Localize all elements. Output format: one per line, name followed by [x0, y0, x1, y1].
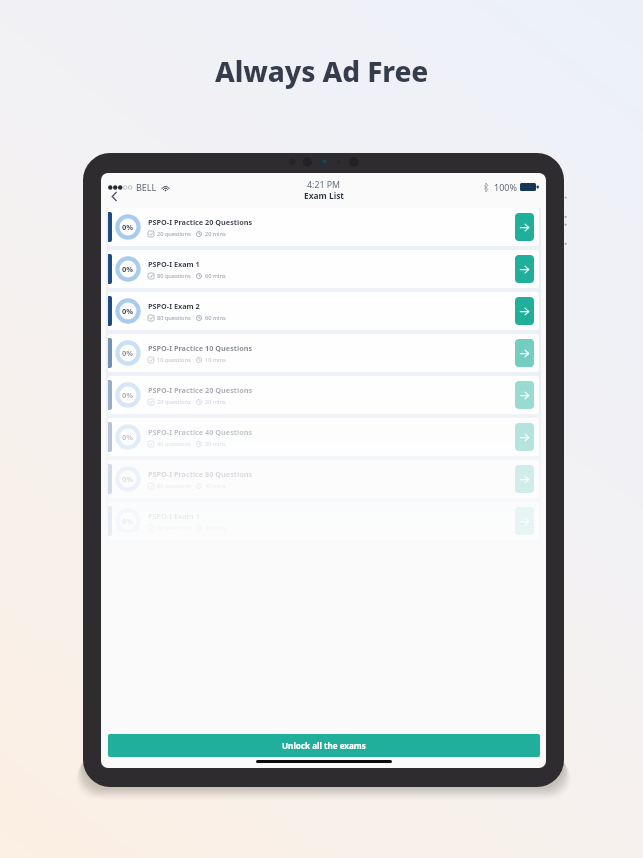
button[interactable]: Start exam [515, 507, 534, 535]
staticText: 60 mins [205, 314, 226, 322]
staticText: 0% [122, 432, 134, 442]
button[interactable]: 0% [108, 418, 539, 456]
staticText: PSPO-I Exam 1 [148, 259, 200, 269]
button[interactable]: Start exam [515, 339, 534, 367]
button[interactable]: Start exam [515, 423, 534, 451]
button[interactable]: Unlock all the exams [108, 734, 540, 757]
staticText: 60 mins [205, 272, 226, 280]
staticText: 0% [122, 222, 134, 232]
staticText: 40 questions [157, 440, 191, 448]
button[interactable]: Start exam [515, 297, 534, 325]
staticText: PSPO-I Practice 20 Questions [148, 385, 253, 395]
staticText: Unlock all the exams [282, 740, 366, 751]
staticText: 20 questions [157, 230, 191, 238]
staticText: PSPO-I Practice 20 Questions [148, 217, 253, 227]
staticText: 0% [122, 306, 134, 316]
button[interactable]: Start exam [515, 213, 534, 241]
staticText: PSPO-I Practice 10 Questions [148, 343, 253, 353]
staticText: 20 mins [205, 230, 226, 238]
staticText: 0% [122, 264, 134, 274]
staticText: 0% [122, 474, 134, 484]
staticText: 0% [122, 516, 134, 526]
button[interactable]: Start exam [515, 465, 534, 493]
staticText: 80 questions [157, 272, 191, 280]
button[interactable]: 0% [108, 376, 539, 414]
staticText: 20 mins [205, 398, 226, 406]
staticText: 0% [122, 348, 134, 358]
staticText: 10 questions [157, 356, 191, 364]
button[interactable]: Start exam [515, 255, 534, 283]
button[interactable]: 0% [108, 292, 539, 330]
staticText: Exam List [304, 190, 344, 201]
staticText: 4:21 PM [307, 179, 341, 191]
staticText: 0% [122, 390, 134, 400]
staticText: 100% [494, 181, 517, 193]
staticText: BELL [136, 181, 157, 193]
staticText: 10 mins [205, 356, 226, 364]
staticText: PSPO-I Practice 40 Questions [148, 427, 253, 437]
staticText: 40 mins [205, 482, 226, 490]
button[interactable]: Back [106, 188, 122, 204]
staticText: Always Ad Free [215, 52, 429, 90]
button[interactable]: 0% [108, 208, 539, 246]
button[interactable]: 0% [108, 334, 539, 372]
button[interactable]: 0% [108, 460, 539, 498]
button[interactable]: 0% [108, 250, 539, 288]
staticText: 80 questions [157, 314, 191, 322]
staticText: 80 questions [157, 482, 191, 490]
button[interactable]: Start exam [515, 381, 534, 409]
staticText: PSPO-I Exam 2 [148, 301, 200, 311]
staticText: PSPO-I Exam 1 [148, 511, 200, 521]
staticText: 20 questions [157, 398, 191, 406]
button[interactable]: 0% [108, 502, 539, 540]
staticText: 30 mins [205, 440, 226, 448]
staticText: PSPO-I Practice 80 Questions [148, 469, 253, 479]
